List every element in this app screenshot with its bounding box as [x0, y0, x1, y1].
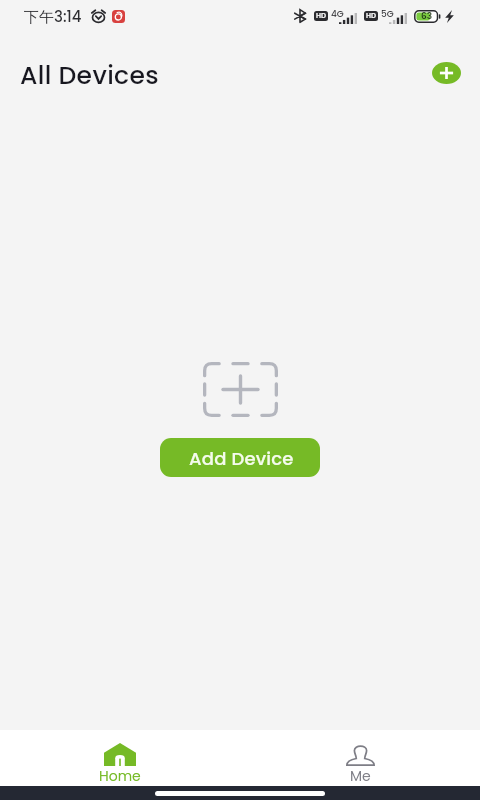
- button[interactable]: Me: [240, 730, 480, 786]
- button[interactable]: Home: [0, 730, 240, 786]
- staticText: 4G: [331, 8, 344, 21]
- staticText: HD: [366, 11, 377, 21]
- staticText: Home: [99, 766, 141, 786]
- button[interactable]: Add device: [432, 62, 461, 84]
- staticText: HD: [316, 11, 327, 21]
- staticText: Me: [350, 766, 371, 786]
- staticText: 下午3:14: [24, 6, 82, 27]
- button[interactable]: Add Device: [160, 438, 320, 477]
- staticText: All Devices: [20, 58, 159, 93]
- staticText: Add Device: [189, 446, 294, 471]
- staticText: 5G: [381, 8, 394, 21]
- staticText: 63: [421, 10, 433, 23]
